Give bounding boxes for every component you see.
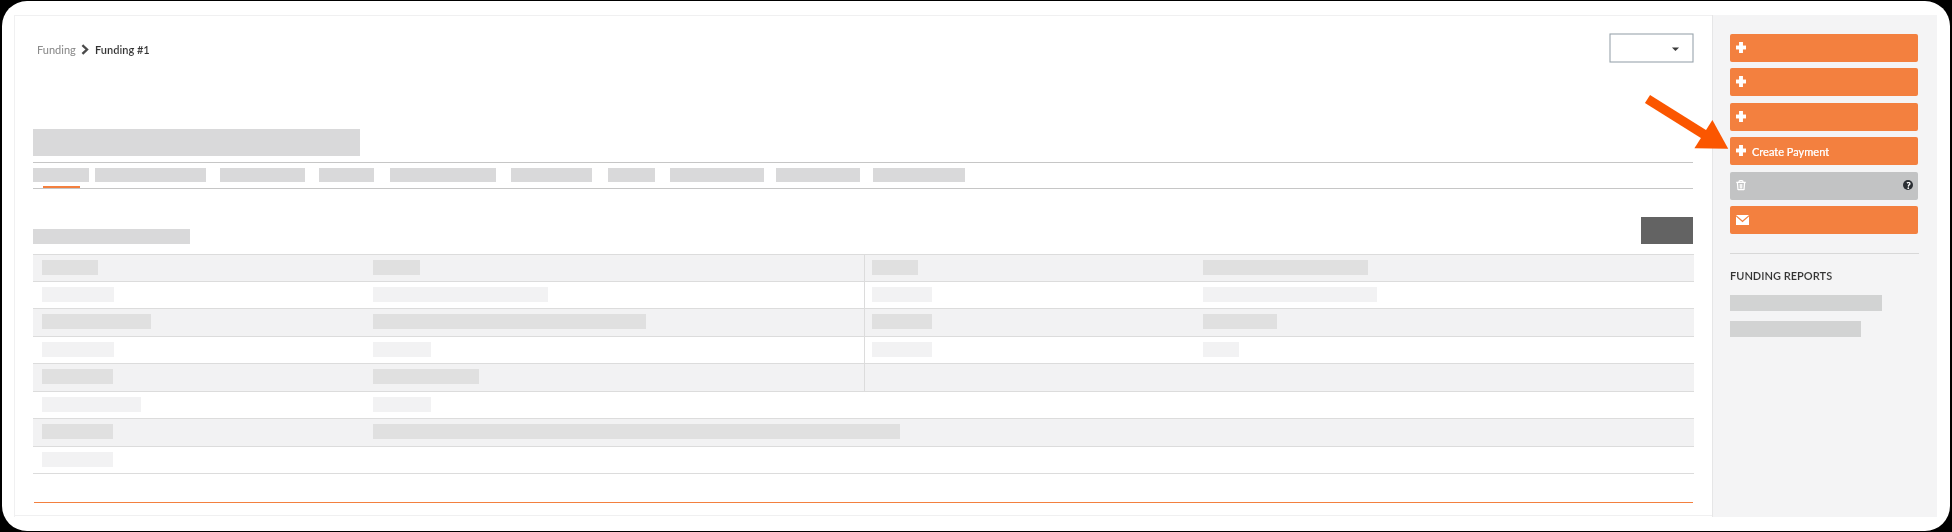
button[interactable]: Delete — [1730, 172, 1918, 200]
button[interactable]: Add — [1730, 68, 1918, 96]
staticText: Funding #1 — [95, 43, 150, 56]
button[interactable]: Add — [1730, 103, 1918, 131]
button[interactable]: Add — [1730, 34, 1918, 62]
staticText: Create Payment — [1752, 145, 1830, 158]
staticText: FUNDING REPORTS — [1730, 269, 1833, 282]
button[interactable]: Select option — [1610, 34, 1693, 62]
button[interactable]: Create Payment — [1730, 137, 1918, 165]
staticText: ? — [1906, 180, 1911, 190]
button[interactable]: Email — [1730, 206, 1918, 234]
button[interactable]: Funding — [37, 43, 76, 56]
